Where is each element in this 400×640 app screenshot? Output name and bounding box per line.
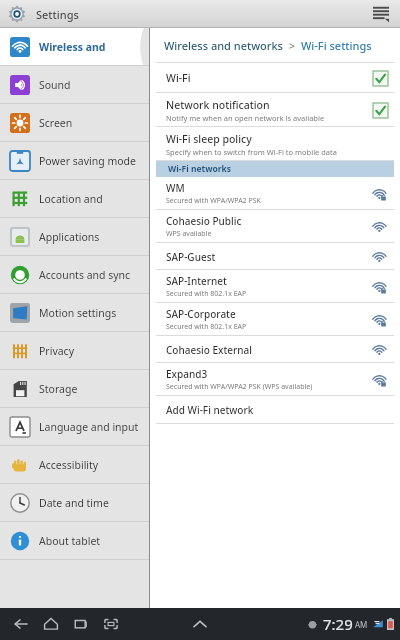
- staticText: AM: [355, 619, 368, 630]
- staticText: Applications: [39, 230, 100, 244]
- staticText: Cohaesio Public: [166, 214, 242, 228]
- button[interactable]: Show keyboard: [189, 613, 211, 635]
- staticText: Accounts and sync: [39, 268, 131, 282]
- button[interactable]: Location and security: [0, 180, 150, 218]
- button[interactable]: Sound: [0, 66, 150, 104]
- button[interactable]: Language and input: [0, 408, 150, 446]
- staticText: Add Wi-Fi network: [166, 403, 254, 417]
- staticText: WM: [166, 181, 185, 195]
- staticText: Notify me when an open network is availa…: [166, 113, 325, 123]
- staticText: SAP-Guest: [166, 250, 216, 264]
- button[interactable]: Home: [36, 608, 66, 640]
- staticText: Cohaesio External: [166, 343, 252, 357]
- staticText: Wi-Fi sleep policy: [166, 132, 252, 146]
- staticText: 7:29: [323, 614, 353, 634]
- staticText: WPS available: [166, 229, 212, 239]
- button[interactable]: About tablet: [0, 522, 150, 560]
- button[interactable]: Add Wi-Fi network: [150, 396, 400, 424]
- button[interactable]: Wireless and networks: [0, 28, 150, 66]
- staticText: Screen: [39, 116, 73, 130]
- button[interactable]: Privacy: [0, 332, 150, 370]
- staticText: Location and security: [39, 192, 142, 206]
- staticText: Accessibility: [39, 458, 99, 472]
- staticText: Network notification: [166, 98, 270, 112]
- button[interactable]: Expand3: [150, 363, 400, 396]
- button[interactable]: Status: [307, 614, 394, 634]
- staticText: About tablet: [39, 534, 101, 548]
- button[interactable]: Storage: [0, 370, 150, 408]
- button[interactable]: Date and time: [0, 484, 150, 522]
- staticText: SAP-Corporate: [166, 307, 236, 321]
- staticText: Secured with WPA/WPA2 PSK: [166, 196, 261, 206]
- button[interactable]: More options: [368, 1, 394, 27]
- staticText: Language and input: [39, 420, 139, 434]
- button[interactable]: Wi-Fi sleep policy: [150, 127, 400, 161]
- button[interactable]: Wi-Fi: [150, 63, 400, 93]
- button[interactable]: Screenshot: [96, 608, 126, 640]
- staticText: Specify when to switch from Wi-Fi to mob…: [166, 147, 337, 157]
- staticText: Sound: [39, 78, 71, 92]
- button[interactable]: Network notification: [150, 93, 400, 127]
- staticText: Wi-Fi: [166, 71, 191, 85]
- staticText: Date and time: [39, 496, 109, 510]
- staticText: Settings: [36, 7, 79, 22]
- staticText: Wi-Fi networks: [168, 163, 232, 175]
- button[interactable]: Applications: [0, 218, 150, 256]
- staticText: Expand3: [166, 367, 208, 381]
- staticText: Wireless and networks: [164, 38, 283, 53]
- button[interactable]: Power saving mode: [0, 142, 150, 180]
- button[interactable]: Accounts and sync: [0, 256, 150, 294]
- button[interactable]: Recent apps: [66, 608, 96, 640]
- button[interactable]: Network notification checkbox: [372, 102, 388, 118]
- button[interactable]: Motion settings: [0, 294, 150, 332]
- button[interactable]: Cohaesio External: [150, 336, 400, 363]
- button[interactable]: Screen: [0, 104, 150, 142]
- staticText: Wi-Fi settings: [301, 38, 372, 53]
- button[interactable]: Back: [6, 608, 36, 640]
- button[interactable]: Cohaesio Public: [150, 210, 400, 243]
- staticText: Secured with 802.1x EAP: [166, 289, 247, 299]
- staticText: Secured with WPA/WPA2 PSK (WPS available…: [166, 382, 313, 392]
- staticText: Privacy: [39, 344, 75, 358]
- staticText: Storage: [39, 382, 78, 396]
- staticText: Motion settings: [39, 306, 117, 320]
- button[interactable]: SAP-Internet: [150, 270, 400, 303]
- staticText: Secured with 802.1x EAP: [166, 322, 247, 332]
- staticText: Power saving mode: [39, 154, 136, 168]
- button[interactable]: WM: [150, 177, 400, 210]
- staticText: >: [283, 38, 301, 53]
- staticText: SAP-Internet: [166, 274, 227, 288]
- button[interactable]: SAP-Corporate: [150, 303, 400, 336]
- button[interactable]: Settings: [6, 3, 28, 25]
- button[interactable]: Accessibility: [0, 446, 150, 484]
- button[interactable]: Wi-Fi checkbox: [372, 70, 388, 86]
- staticText: Wireless and networks: [39, 40, 142, 54]
- button[interactable]: SAP-Guest: [150, 243, 400, 270]
